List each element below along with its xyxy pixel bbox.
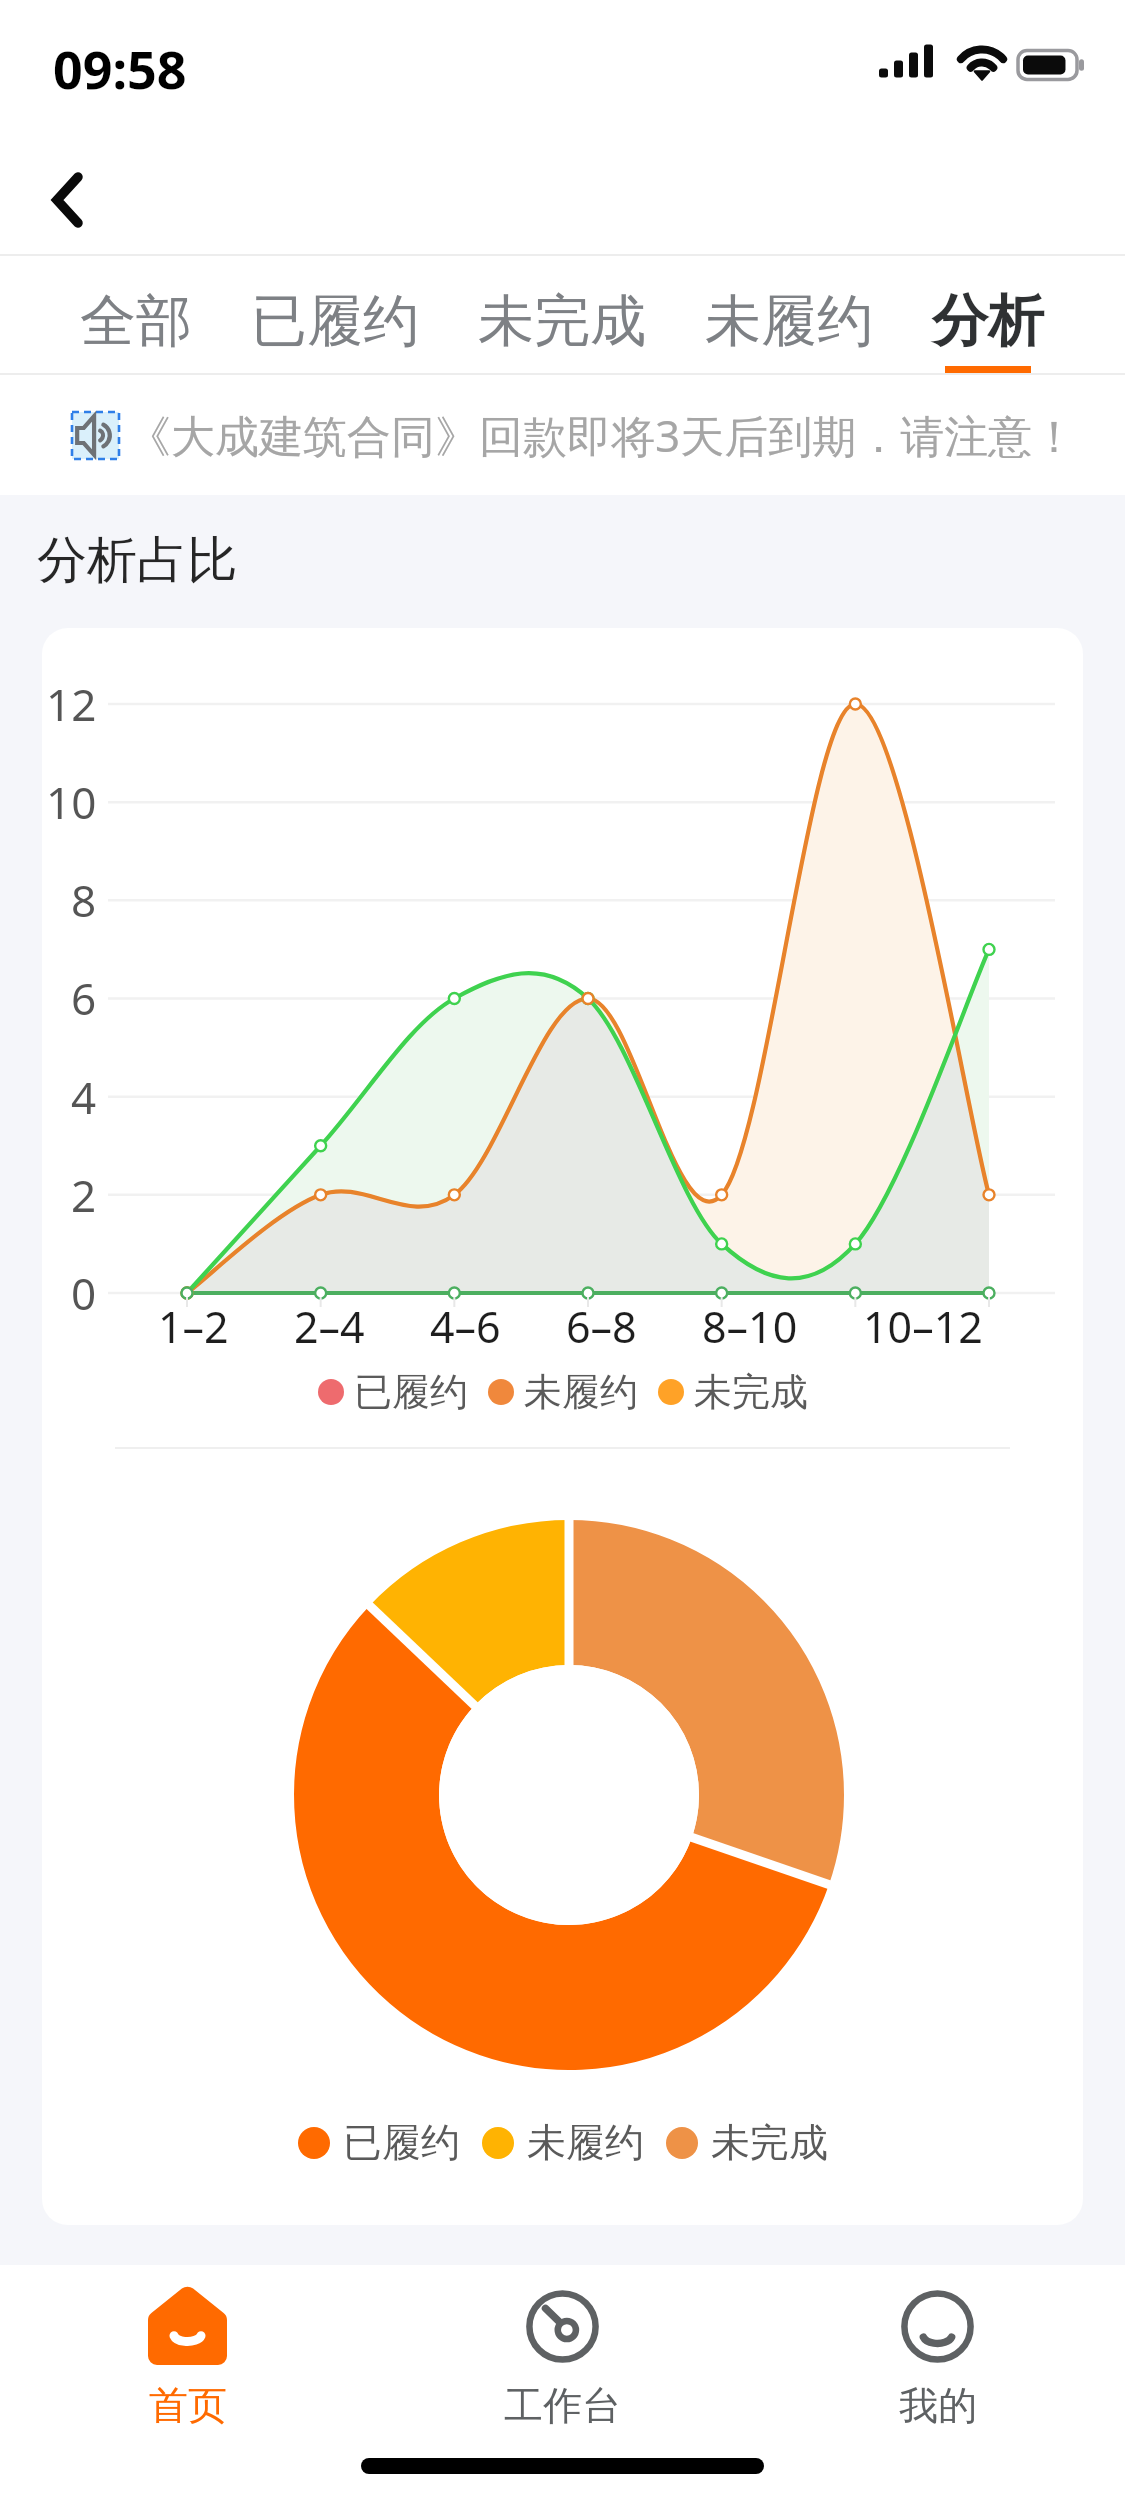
staticText: 6–8 bbox=[566, 1297, 637, 1356]
button[interactable]: 未完成 bbox=[478, 256, 646, 375]
staticText: 已履约 bbox=[251, 286, 419, 357]
staticText: 10 bbox=[46, 772, 97, 832]
staticText: 09:58 bbox=[53, 33, 187, 104]
staticText: 分析占比 bbox=[37, 529, 237, 592]
staticText: 2–4 bbox=[294, 1297, 365, 1356]
button[interactable]: 我的 bbox=[750, 2265, 1125, 2451]
staticText: 10–12 bbox=[863, 1297, 983, 1356]
staticText: 分析 bbox=[932, 286, 1044, 357]
staticText: 8–10 bbox=[702, 1297, 798, 1356]
staticText: 未履约 bbox=[527, 2118, 644, 2167]
staticText: 12 bbox=[46, 674, 97, 734]
staticText: 首页 bbox=[149, 2381, 227, 2430]
staticText: 6 bbox=[71, 968, 97, 1028]
staticText: 未履约 bbox=[524, 1368, 638, 1416]
staticText: 1–2 bbox=[158, 1297, 229, 1356]
staticText: 已履约 bbox=[354, 1368, 468, 1416]
staticText: 《大成建筑合同》回款即将3天后到期．请注意！ bbox=[127, 405, 1077, 465]
button[interactable]: 全部 bbox=[80, 256, 192, 375]
staticText: 未完成 bbox=[711, 2118, 828, 2167]
staticText: 0 bbox=[71, 1263, 97, 1323]
button[interactable]: 已履约 bbox=[251, 256, 419, 375]
staticText: 未完成 bbox=[478, 286, 646, 357]
staticText: 工作台 bbox=[504, 2381, 621, 2430]
button[interactable]: 首页 bbox=[0, 2265, 375, 2451]
staticText: 我的 bbox=[899, 2381, 977, 2430]
staticText: 未履约 bbox=[705, 286, 873, 357]
button[interactable]: 未履约 bbox=[705, 256, 873, 375]
staticText: 已履约 bbox=[343, 2118, 460, 2167]
button[interactable]: Announcement bbox=[72, 412, 119, 459]
staticText: 4 bbox=[71, 1067, 97, 1127]
staticText: 2 bbox=[71, 1165, 97, 1225]
staticText: 未完成 bbox=[694, 1368, 808, 1416]
button[interactable]: 分析 bbox=[932, 256, 1044, 375]
button[interactable]: 工作台 bbox=[375, 2265, 750, 2451]
button[interactable]: Back bbox=[18, 151, 116, 249]
staticText: 8 bbox=[71, 870, 97, 930]
staticText: 全部 bbox=[80, 286, 192, 357]
staticText: 4–6 bbox=[430, 1297, 501, 1356]
